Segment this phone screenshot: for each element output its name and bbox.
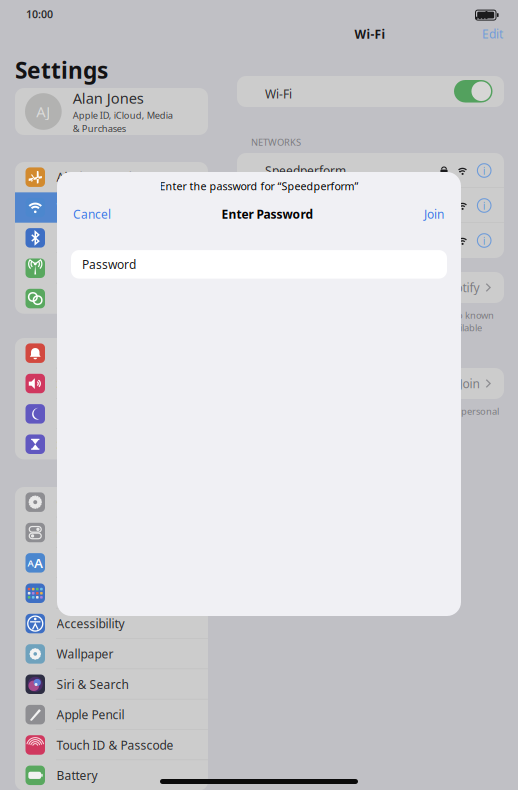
staticText: Home Screen & Dock [56, 585, 175, 601]
button[interactable]: General [15, 487, 208, 517]
staticText: Mobile Data [56, 260, 124, 276]
staticText: Touch ID & Passcode [56, 737, 173, 753]
staticText: Notify [446, 279, 479, 295]
staticText: i [483, 198, 486, 213]
staticText: Alan Jones [73, 88, 144, 108]
staticText: Battery [56, 767, 97, 783]
button[interactable]: Wi-Fi [15, 192, 208, 223]
button[interactable]: Notifications [15, 338, 208, 368]
staticText: Screen Time [56, 436, 126, 452]
staticText: Settings [15, 55, 108, 85]
button[interactable]: Mobile Data [15, 253, 208, 283]
staticText: Wi-Fi [56, 200, 83, 215]
staticText: Sounds [56, 376, 97, 391]
button[interactable]: Personal Hotspot [15, 283, 208, 314]
staticText: Siri & Search [56, 676, 128, 692]
button[interactable]: Cancel [73, 206, 111, 222]
button[interactable]: Do Not Disturb [15, 399, 208, 429]
button[interactable]: Speedperform-5G [237, 188, 504, 223]
staticText: Personal Hotspot [56, 291, 152, 306]
button[interactable]: Settings [15, 55, 108, 85]
button[interactable]: BT-Hub-2401 [237, 223, 504, 258]
staticText: Enter Password [221, 206, 313, 222]
staticText: A [27, 557, 33, 569]
staticText: Ask to Join [422, 375, 479, 391]
staticText: Password [82, 256, 136, 272]
button[interactable]: Edit [482, 26, 503, 42]
button[interactable]: Wallpaper [15, 639, 208, 669]
staticText: i [483, 233, 486, 248]
button[interactable]: Speedperform [237, 153, 504, 188]
staticText: Wallpaper [56, 646, 113, 662]
staticText: Bluetooth [56, 230, 110, 246]
button[interactable]: Screen Time [15, 429, 208, 459]
button[interactable]: Home Screen & Dock [15, 578, 208, 608]
staticText: Allow this device to automatically disco… [251, 405, 499, 430]
staticText: Wi-Fi [265, 86, 292, 102]
staticText: Do Not Disturb [56, 406, 139, 422]
button[interactable]: Sounds [15, 368, 208, 399]
button[interactable]: Control Centre [15, 517, 208, 548]
button[interactable]: Join [424, 206, 444, 222]
staticText: 10:00 [26, 7, 53, 21]
staticText: Cancel [73, 206, 111, 222]
button[interactable]: Airplane Mode [15, 162, 208, 192]
staticText: Airplane Mode [56, 169, 138, 185]
button[interactable]: Siri & Search [15, 669, 208, 699]
button[interactable]: Battery [15, 760, 208, 790]
staticText: Notifications [56, 345, 126, 361]
staticText: Display & Brightness [56, 555, 172, 571]
staticText: AJ [36, 102, 50, 121]
staticText: Apple Pencil [56, 707, 124, 723]
staticText: Speedperform-5G [265, 197, 366, 213]
button[interactable]: Bluetooth [15, 223, 208, 253]
staticText: Edit [482, 26, 503, 42]
staticText: Speedperform [265, 162, 346, 178]
staticText: Known networks will be joined automatica… [251, 309, 494, 346]
staticText: Wi-Fi [354, 26, 385, 42]
button[interactable]: Auto-Join Hotspot [237, 368, 504, 399]
staticText: Control Centre [56, 525, 138, 540]
staticText: i [483, 163, 486, 178]
staticText: NETWORKS [251, 136, 301, 148]
button[interactable]: Wi-Fi [454, 80, 492, 102]
staticText: & Purchases [73, 122, 126, 135]
button[interactable]: A [15, 548, 208, 578]
staticText: Apple ID, iCloud, Media [73, 109, 173, 121]
button[interactable]: Ask to Join Networks [237, 272, 504, 303]
button[interactable]: Apple Pencil [15, 699, 208, 730]
button[interactable]: Accessibility [15, 608, 208, 639]
staticText: Join [424, 206, 444, 222]
button[interactable]: AJ [15, 88, 208, 135]
staticText: A [34, 554, 43, 572]
staticText: General [56, 494, 101, 510]
button[interactable]: Touch ID & Passcode [15, 730, 208, 760]
staticText: Enter the password for “Speedperform” [159, 179, 358, 193]
staticText: Accessibility [56, 616, 124, 631]
